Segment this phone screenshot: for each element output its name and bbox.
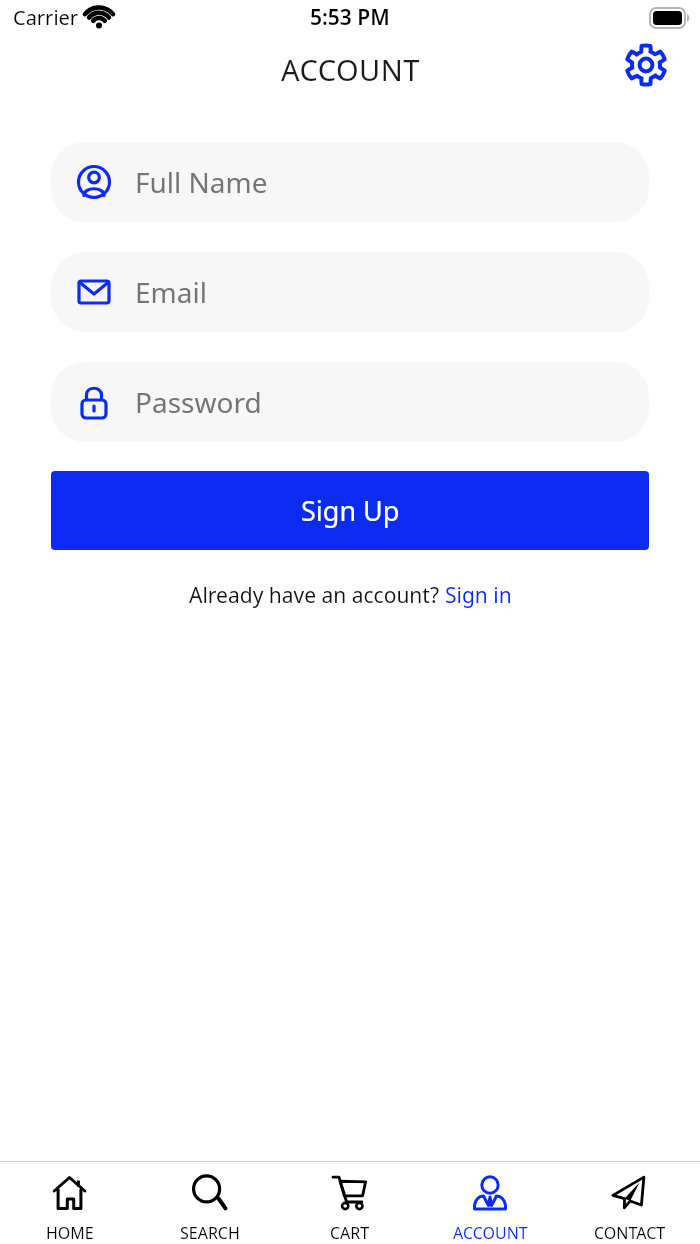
staticText: Sign Up bbox=[301, 492, 400, 529]
staticText: SEARCH bbox=[180, 1222, 240, 1244]
button[interactable]: Sign in bbox=[445, 581, 512, 610]
staticText: Carrier bbox=[13, 4, 79, 31]
button[interactable]: SEARCH bbox=[140, 1162, 280, 1244]
button[interactable] bbox=[624, 43, 668, 87]
staticText: HOME bbox=[46, 1222, 94, 1244]
button[interactable]: Password bbox=[51, 362, 649, 442]
staticText: Already have an account? bbox=[189, 581, 445, 610]
button[interactable]: Full Name bbox=[51, 142, 649, 222]
staticText: 5:53 PM bbox=[310, 3, 390, 32]
staticText: Password bbox=[135, 383, 262, 421]
staticText: CONTACT bbox=[594, 1222, 666, 1244]
staticText: ACCOUNT bbox=[281, 50, 420, 89]
button[interactable]: Email bbox=[51, 252, 649, 332]
button[interactable]: CONTACT bbox=[560, 1162, 700, 1244]
staticText: CART bbox=[330, 1222, 370, 1244]
button[interactable]: CART bbox=[280, 1162, 420, 1244]
staticText: Full Name bbox=[135, 163, 268, 201]
button[interactable]: ACCOUNT bbox=[420, 1162, 560, 1244]
button[interactable]: HOME bbox=[0, 1162, 140, 1244]
button[interactable]: Sign Up bbox=[51, 471, 649, 550]
staticText: ACCOUNT bbox=[453, 1222, 528, 1244]
staticText: Email bbox=[135, 273, 207, 311]
